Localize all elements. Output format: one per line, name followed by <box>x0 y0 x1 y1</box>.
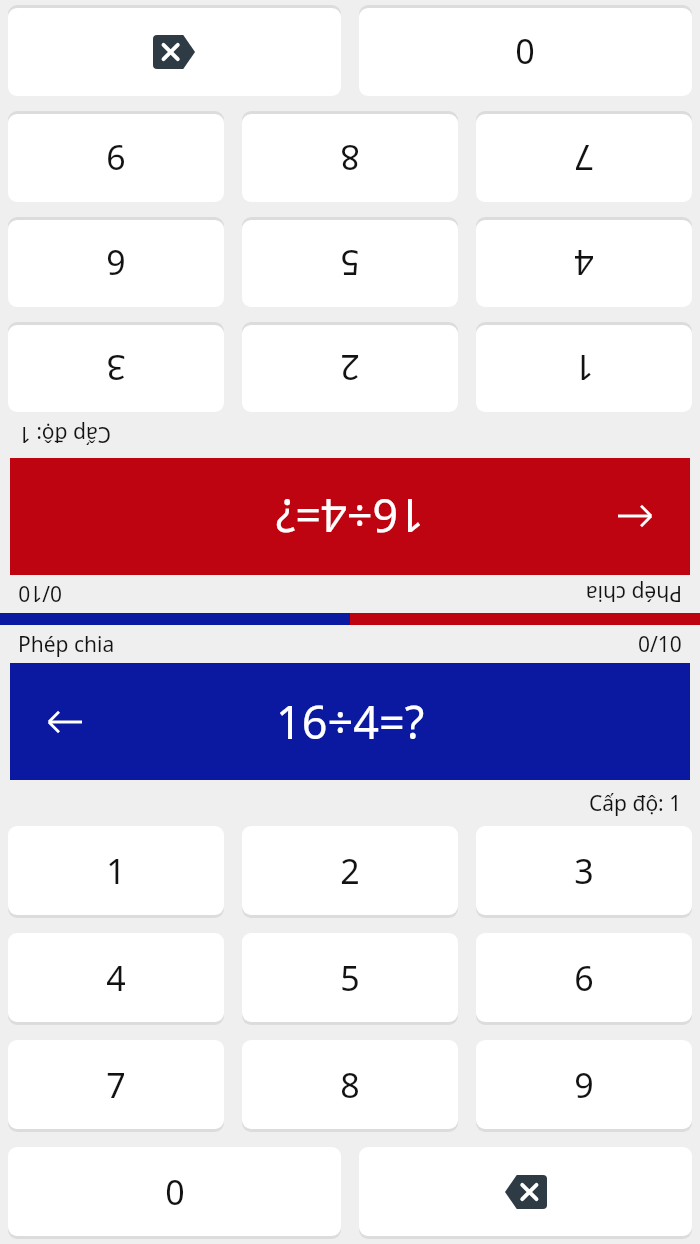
button[interactable]: 6 <box>8 220 224 307</box>
staticText: 0/10 <box>638 630 682 659</box>
staticText: 8 <box>340 135 360 181</box>
button[interactable]: Back <box>40 698 88 746</box>
staticText: 9 <box>574 1062 594 1108</box>
staticText: Cấp độ: 1 <box>18 420 111 449</box>
staticText: 4 <box>106 955 126 1001</box>
button[interactable]: 3 <box>8 325 224 412</box>
staticText: 1 <box>106 848 126 894</box>
staticText: 1 <box>574 345 594 391</box>
button[interactable]: 0 <box>8 1147 341 1236</box>
staticText: 0 <box>515 29 535 75</box>
staticText: 3 <box>574 848 594 894</box>
staticText: 6 <box>106 240 126 286</box>
button[interactable]: 8 <box>242 1040 458 1129</box>
staticText: 2 <box>340 345 360 391</box>
staticText: 5 <box>340 240 360 286</box>
button[interactable]: 16÷4=? <box>10 458 690 575</box>
button[interactable]: 7 <box>8 1040 224 1129</box>
staticText: Phép chia <box>585 579 682 608</box>
button[interactable]: 2 <box>242 325 458 412</box>
staticText: 0/10 <box>18 579 62 608</box>
staticText: Cấp độ: 1 <box>589 789 682 818</box>
staticText: Phép chia <box>18 630 115 659</box>
staticText: 7 <box>106 1062 126 1108</box>
staticText: 6 <box>574 955 594 1001</box>
button[interactable]: Back <box>612 492 660 540</box>
button[interactable]: 6 <box>476 933 692 1022</box>
button[interactable]: 5 <box>242 220 458 307</box>
button[interactable]: 16÷4=? <box>10 663 690 780</box>
staticText: 2 <box>340 848 360 894</box>
button[interactable]: 0 <box>359 8 692 96</box>
button[interactable]: 3 <box>476 826 692 915</box>
button[interactable]: Backspace <box>8 8 341 96</box>
staticText: 16÷4=? <box>275 486 424 547</box>
staticText: 8 <box>340 1062 360 1108</box>
button[interactable]: 9 <box>8 114 224 202</box>
button[interactable]: Backspace <box>359 1147 692 1236</box>
button[interactable]: 1 <box>476 325 692 412</box>
button[interactable]: 2 <box>242 826 458 915</box>
button[interactable]: 4 <box>8 933 224 1022</box>
button[interactable]: 9 <box>476 1040 692 1129</box>
button[interactable]: 7 <box>476 114 692 202</box>
button[interactable]: 5 <box>242 933 458 1022</box>
staticText: 0 <box>165 1169 185 1215</box>
staticText: 7 <box>574 135 594 181</box>
button[interactable]: 8 <box>242 114 458 202</box>
button[interactable]: 4 <box>476 220 692 307</box>
staticText: 4 <box>574 240 594 286</box>
button[interactable]: 1 <box>8 826 224 915</box>
staticText: 3 <box>106 345 126 391</box>
staticText: 16÷4=? <box>276 691 425 752</box>
staticText: 5 <box>340 955 360 1001</box>
staticText: 9 <box>106 135 126 181</box>
